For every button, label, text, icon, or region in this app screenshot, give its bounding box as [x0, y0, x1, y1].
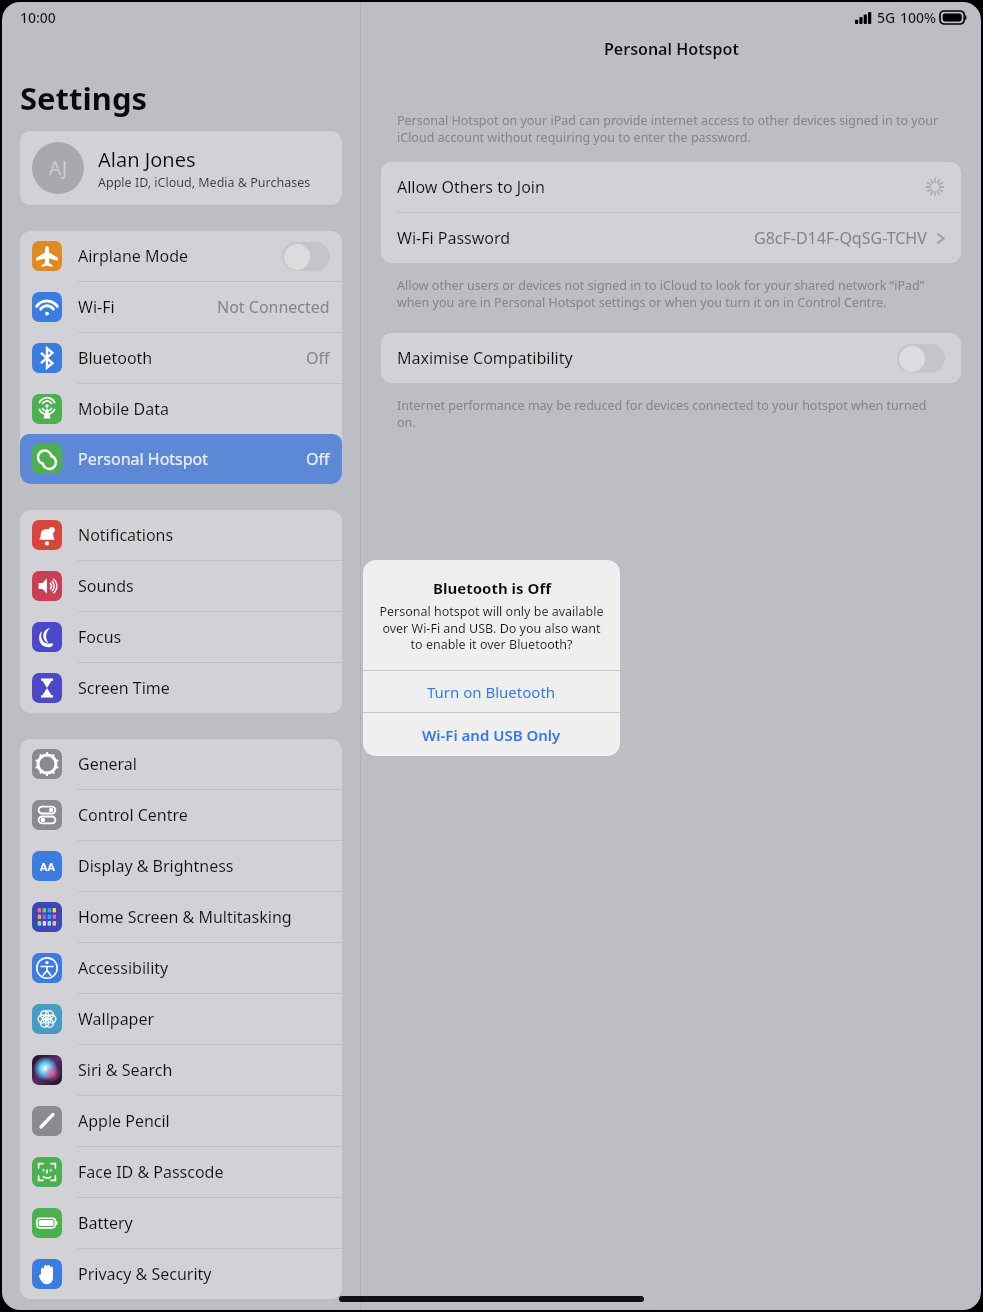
staticText: Apple Pencil — [78, 1110, 170, 1132]
staticText: Personal Hotspot — [604, 38, 739, 60]
button[interactable]: Toggle — [282, 242, 330, 271]
staticText: Accessibility — [78, 957, 169, 979]
staticText: Bluetooth is Off — [433, 578, 551, 598]
button[interactable]: Face ID & Passcode — [20, 1147, 342, 1197]
staticText: Control Centre — [78, 804, 188, 826]
staticText: Siri & Search — [78, 1059, 173, 1081]
staticText: Turn on Bluetooth — [427, 682, 556, 702]
staticText: G8cF-D14F-QqSG-TCHV — [754, 227, 927, 249]
staticText: Not Connected — [217, 296, 330, 318]
button[interactable]: AA — [20, 841, 342, 891]
button[interactable]: Home Screen & Multitasking — [20, 892, 342, 942]
staticText: Bluetooth — [78, 347, 153, 369]
button[interactable]: Battery — [20, 1198, 342, 1248]
staticText: Focus — [78, 626, 122, 648]
button[interactable]: Notifications — [20, 510, 342, 560]
staticText: Apple ID, iCloud, Media & Purchases — [98, 174, 311, 191]
staticText: Personal Hotspot — [78, 448, 209, 470]
button[interactable]: Sounds — [20, 561, 342, 611]
button[interactable]: Focus — [20, 612, 342, 662]
staticText: Wallpaper — [78, 1008, 155, 1030]
staticText: Maximise Compatibility — [397, 347, 573, 369]
button[interactable]: Bluetooth — [20, 333, 342, 383]
staticText: Airplane Mode — [78, 245, 189, 267]
button[interactable]: Accessibility — [20, 943, 342, 993]
button[interactable]: Allow Others to Join — [381, 162, 961, 212]
button[interactable]: Airplane Mode — [20, 231, 342, 281]
staticText: Home Screen & Multitasking — [78, 906, 292, 928]
staticText: 5G — [877, 8, 896, 27]
staticText: Internet performance may be reduced for … — [397, 397, 945, 431]
button[interactable]: Wi-Fi Password — [381, 213, 961, 263]
staticText: Mobile Data — [78, 398, 169, 420]
staticText: Wi-Fi — [78, 296, 115, 318]
staticText: Battery — [78, 1212, 133, 1234]
staticText: 10:00 — [20, 8, 56, 27]
button[interactable]: Toggle — [897, 344, 945, 373]
staticText: Off — [306, 347, 330, 369]
staticText: Wi-Fi and USB Only — [422, 725, 561, 745]
button[interactable]: Apple Pencil — [20, 1096, 342, 1146]
button[interactable]: Turn on Bluetooth — [363, 671, 620, 712]
staticText: Allow other users or devices not signed … — [397, 277, 945, 311]
button[interactable]: General — [20, 739, 342, 789]
button[interactable]: Personal Hotspot — [20, 434, 342, 484]
button[interactable]: Screen Time — [20, 663, 342, 713]
staticText: Screen Time — [78, 677, 170, 699]
staticText: General — [78, 753, 137, 775]
button[interactable]: Control Centre — [20, 790, 342, 840]
staticText: AA — [40, 859, 55, 874]
button[interactable]: Wi-Fi and USB Only — [363, 713, 620, 756]
staticText: Allow Others to Join — [397, 176, 545, 198]
staticText: Off — [306, 448, 330, 470]
staticText: AJ — [49, 155, 68, 181]
staticText: Face ID & Passcode — [78, 1161, 224, 1183]
staticText: 100% — [900, 8, 936, 27]
button[interactable]: Siri & Search — [20, 1045, 342, 1095]
button[interactable]: Maximise Compatibility — [381, 333, 961, 383]
staticText: Settings — [20, 77, 148, 119]
button[interactable]: Wallpaper — [20, 994, 342, 1044]
button[interactable]: AJ — [20, 131, 342, 205]
staticText: Personal hotspot will only be available … — [377, 603, 606, 652]
staticText: Display & Brightness — [78, 855, 234, 877]
staticText: Alan Jones — [98, 146, 196, 173]
button[interactable]: Wi-Fi — [20, 282, 342, 332]
staticText: Privacy & Security — [78, 1263, 212, 1285]
staticText: Notifications — [78, 524, 174, 546]
staticText: Wi-Fi Password — [397, 227, 511, 249]
button[interactable]: Privacy & Security — [20, 1249, 342, 1299]
staticText: Personal Hotspot on your iPad can provid… — [397, 112, 945, 146]
staticText: Sounds — [78, 575, 134, 597]
other: Loading — [925, 177, 945, 197]
button[interactable]: Mobile Data — [20, 384, 342, 434]
